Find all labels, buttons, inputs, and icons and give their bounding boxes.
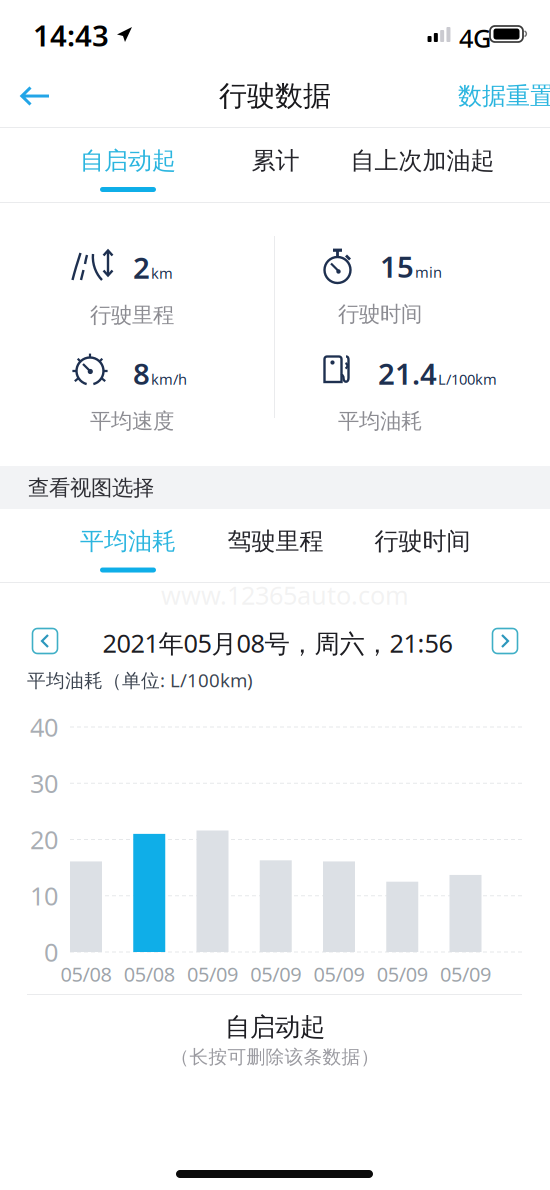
staticText: 4G [459, 21, 491, 55]
staticText: 0 [44, 935, 58, 969]
button[interactable]: 行驶时间 [349, 508, 496, 582]
staticText: www.12365auto.com [161, 578, 409, 612]
staticText: 21.4 [378, 354, 437, 393]
staticText: 平均速度 [90, 408, 174, 434]
staticText: 05/08 [60, 961, 111, 987]
staticText: 2 [133, 248, 150, 287]
staticText: 05/09 [313, 961, 364, 987]
button[interactable]: 自启动起 [54, 128, 202, 202]
staticText: km [151, 263, 173, 283]
staticText: 14:43 [33, 15, 109, 54]
staticText: 2021年05月08号，周六，21:56 [102, 626, 452, 660]
staticText: 累计 [251, 146, 299, 175]
button[interactable]: 返回 [4, 66, 66, 126]
staticText: 查看视图选择 [28, 475, 154, 501]
staticText: 行驶时间 [374, 526, 470, 556]
staticText: 平均油耗 [338, 408, 422, 434]
staticText: L/100km [438, 369, 497, 389]
staticText: 05/09 [440, 961, 491, 987]
button[interactable]: 下一条记录 [481, 617, 529, 665]
staticText: 自启动起 [80, 146, 176, 175]
staticText: 自上次加油起 [350, 146, 494, 175]
button[interactable]: 驾驶里程 [202, 508, 349, 582]
staticText: 平均油耗（单位: L/100km) [27, 668, 253, 692]
staticText: 05/09 [250, 961, 301, 987]
button[interactable]: 自上次加油起 [349, 128, 496, 202]
staticText: min [415, 262, 442, 282]
staticText: 行驶数据 [219, 79, 331, 113]
staticText: 30 [30, 766, 58, 800]
staticText: 驾驶里程 [227, 526, 323, 556]
staticText: 05/08 [124, 961, 175, 987]
staticText: 8 [133, 354, 150, 393]
button[interactable]: 平均油耗 [54, 508, 202, 582]
staticText: 平均油耗 [80, 526, 176, 556]
button[interactable]: 数据重置 [453, 66, 550, 126]
staticText: 40 [30, 710, 58, 744]
staticText: 20 [30, 823, 58, 856]
button[interactable]: 上一条记录 [21, 617, 69, 665]
staticText: （长按可删除该条数据） [170, 1045, 379, 1068]
staticText: 05/09 [377, 961, 428, 987]
staticText: 10 [30, 879, 58, 912]
staticText: 05/09 [187, 961, 238, 987]
staticText: 15 [380, 247, 414, 286]
staticText: 行驶时间 [338, 301, 422, 327]
staticText: 行驶里程 [90, 302, 174, 328]
staticText: km/h [151, 369, 187, 389]
button[interactable]: 累计 [202, 128, 349, 202]
staticText: 数据重置 [458, 81, 550, 111]
staticText: 自启动起 [225, 1011, 325, 1042]
